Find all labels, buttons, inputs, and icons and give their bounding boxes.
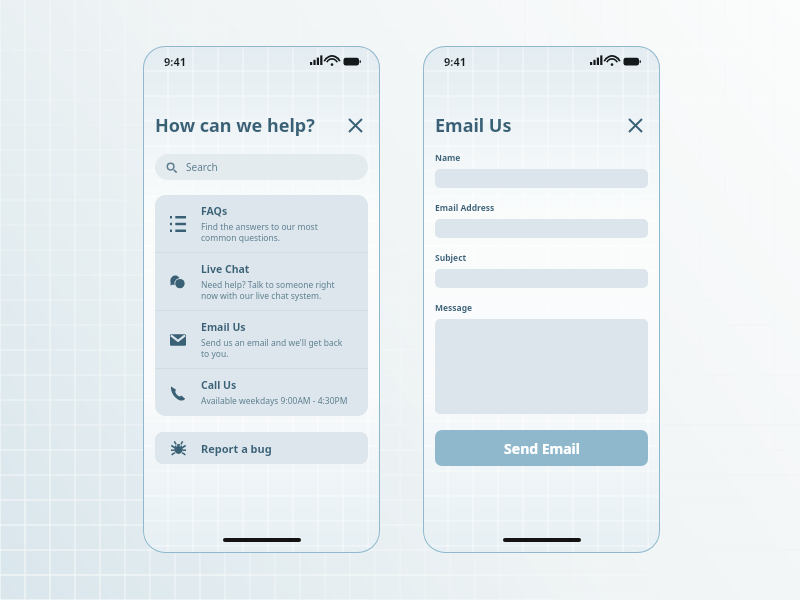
staticText: How can we help? — [155, 113, 315, 138]
staticText: FAQs — [201, 204, 228, 218]
button[interactable]: Close — [342, 112, 368, 138]
staticText: Find the answers to our most common ques… — [201, 221, 318, 243]
button[interactable]: Email Us — [155, 311, 368, 368]
staticText: Available weekdays 9:00AM - 4:30PM — [201, 395, 348, 407]
staticText: Search — [186, 160, 218, 174]
button[interactable]: Report a bug — [155, 432, 368, 464]
staticText: Call Us — [201, 378, 237, 392]
button[interactable]: Close — [622, 112, 648, 138]
button[interactable]: FAQs — [155, 195, 368, 252]
staticText: Subject — [435, 252, 467, 264]
staticText: Email Us — [201, 320, 246, 334]
staticText: Message — [435, 302, 473, 314]
button[interactable]: Search — [155, 154, 368, 180]
staticText: 9:41 — [444, 54, 466, 69]
staticText: Live Chat — [201, 262, 250, 276]
staticText: Name — [435, 152, 461, 164]
button[interactable]: Call Us — [155, 369, 368, 416]
staticText: Email Address — [435, 202, 495, 214]
staticText: Send Email — [504, 439, 580, 458]
staticText: Report a bug — [201, 441, 272, 456]
staticText: Send us an email and we'll get back to y… — [201, 337, 343, 359]
staticText: Email Us — [435, 113, 512, 138]
staticText: Need help? Talk to someone right now wit… — [201, 279, 335, 301]
button[interactable]: Live Chat — [155, 253, 368, 310]
staticText: 9:41 — [164, 54, 186, 69]
button[interactable]: Send Email — [435, 430, 648, 466]
